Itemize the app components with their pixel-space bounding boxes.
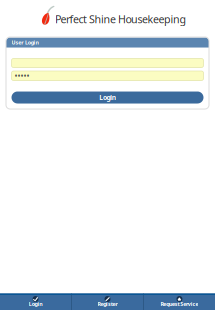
staticText: Login bbox=[29, 300, 42, 308]
staticText: ••••• bbox=[14, 70, 29, 81]
button[interactable]: Login bbox=[6, 91, 209, 103]
staticText: Perfect Shine Housekeeping bbox=[55, 12, 186, 26]
button[interactable]: Login bbox=[0, 293, 71, 310]
staticText: Login bbox=[99, 93, 116, 102]
staticText: Request Service bbox=[160, 300, 198, 308]
button[interactable]: Register bbox=[72, 293, 143, 310]
staticText: Register bbox=[97, 300, 117, 308]
button[interactable]: Request Service bbox=[144, 293, 215, 310]
staticText: User Login bbox=[11, 39, 38, 46]
